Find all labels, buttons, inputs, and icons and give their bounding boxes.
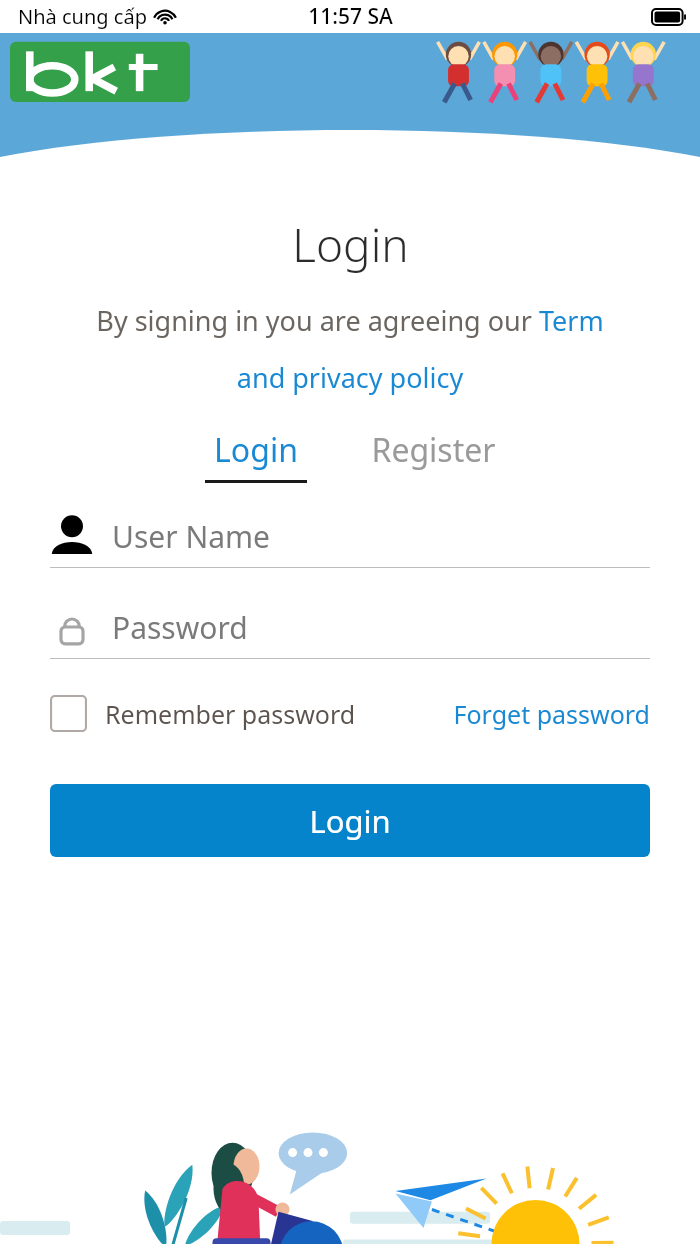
staticText: Nhà cung cấp: [18, 3, 147, 30]
staticText: Login: [292, 213, 409, 276]
button[interactable]: Login: [50, 784, 650, 857]
button[interactable]: By signing in you are agreeing our Term …: [84, 302, 616, 396]
staticText: Password: [112, 607, 248, 648]
staticText: Forget password: [453, 697, 650, 731]
other: User: [50, 515, 94, 557]
button[interactable]: Register: [365, 428, 502, 472]
button[interactable]: Password: [50, 606, 650, 659]
button[interactable]: Remember password: [50, 691, 356, 736]
staticText: Login: [214, 428, 298, 472]
button[interactable]: Forget password: [453, 693, 650, 735]
staticText: Remember password: [105, 697, 356, 731]
staticText: Login: [309, 800, 391, 842]
staticText: User Name: [112, 516, 271, 557]
other: Password: [50, 606, 94, 648]
button[interactable]: Login: [199, 428, 313, 483]
staticText: 11:57 SA: [308, 2, 393, 31]
button[interactable]: User: [50, 515, 650, 568]
staticText: Register: [371, 428, 496, 472]
